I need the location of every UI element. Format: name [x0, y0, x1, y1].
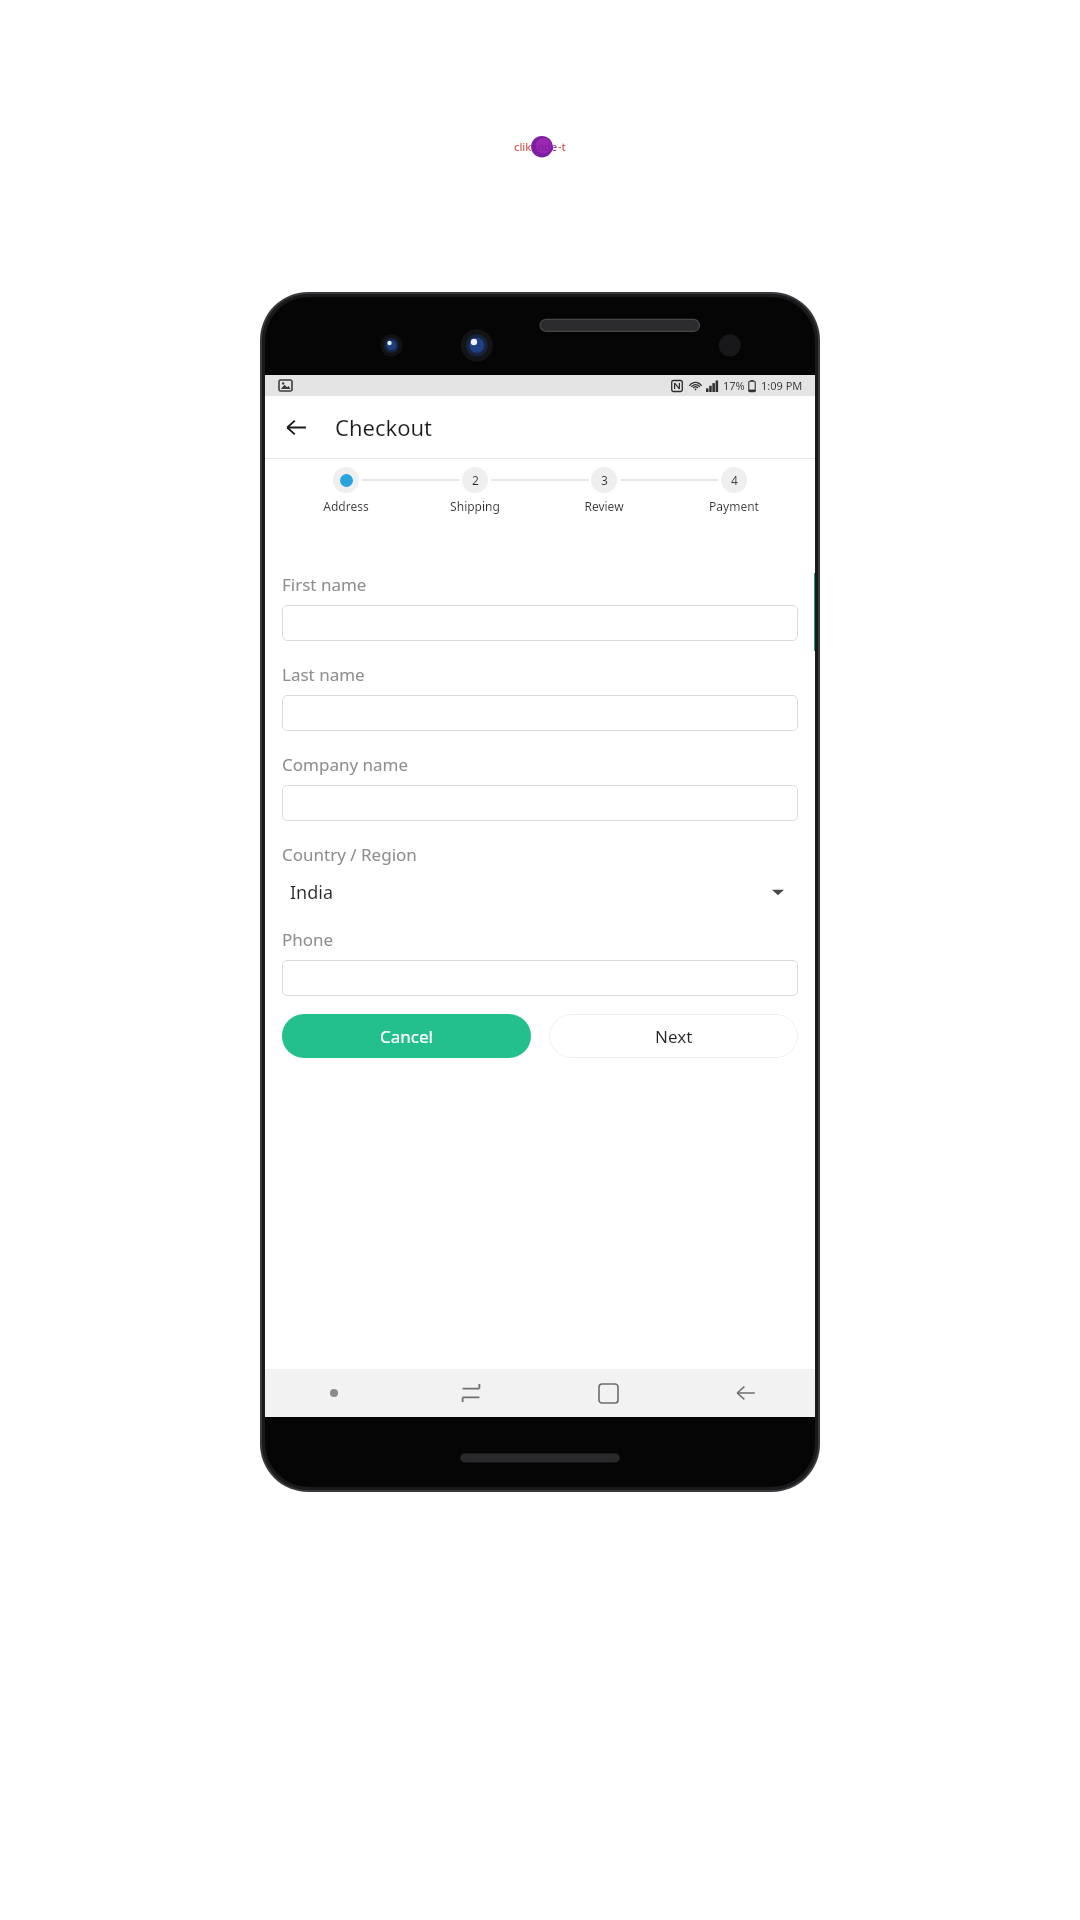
staticText: Address — [323, 498, 369, 514]
staticText: -t — [558, 139, 566, 154]
button[interactable] — [282, 960, 798, 996]
staticText: clik — [514, 139, 532, 154]
button[interactable]: 4 — [669, 467, 799, 514]
button[interactable]: Assistant — [265, 1369, 402, 1417]
staticText: 3 — [601, 472, 608, 488]
button[interactable]: India — [282, 870, 798, 914]
other: Open country list — [768, 882, 788, 902]
staticText: Checkout — [335, 412, 433, 442]
staticText: 4 — [731, 472, 738, 488]
button[interactable]: Back — [273, 404, 319, 450]
staticText: 2 — [472, 472, 479, 488]
button[interactable]: Address — [281, 467, 410, 514]
button[interactable]: 3 — [539, 467, 669, 514]
staticText: Next — [655, 1025, 693, 1048]
staticText: First name — [282, 573, 367, 596]
staticText: Phone — [282, 928, 334, 951]
button[interactable] — [282, 605, 798, 641]
staticText: Country / Region — [282, 843, 417, 866]
staticText: Payment — [709, 498, 759, 514]
button[interactable]: Back — [677, 1369, 815, 1417]
staticText: Shipping — [450, 498, 500, 514]
button[interactable] — [282, 785, 798, 821]
staticText: Last name — [282, 663, 365, 686]
staticText: Company name — [282, 753, 409, 776]
staticText: Cancel — [380, 1025, 433, 1048]
staticText: 1:09 PM — [761, 378, 803, 393]
button[interactable]: Switch apps — [402, 1369, 539, 1417]
staticText: Review — [584, 498, 624, 514]
button[interactable]: 2 — [410, 467, 539, 514]
staticText: 17% — [723, 378, 745, 393]
button[interactable]: Home — [539, 1369, 677, 1417]
button[interactable]: Cancel — [282, 1014, 531, 1058]
button[interactable]: Next — [549, 1014, 798, 1058]
button[interactable] — [282, 695, 798, 731]
staticText: India — [290, 880, 334, 905]
staticText: code — [532, 139, 558, 154]
